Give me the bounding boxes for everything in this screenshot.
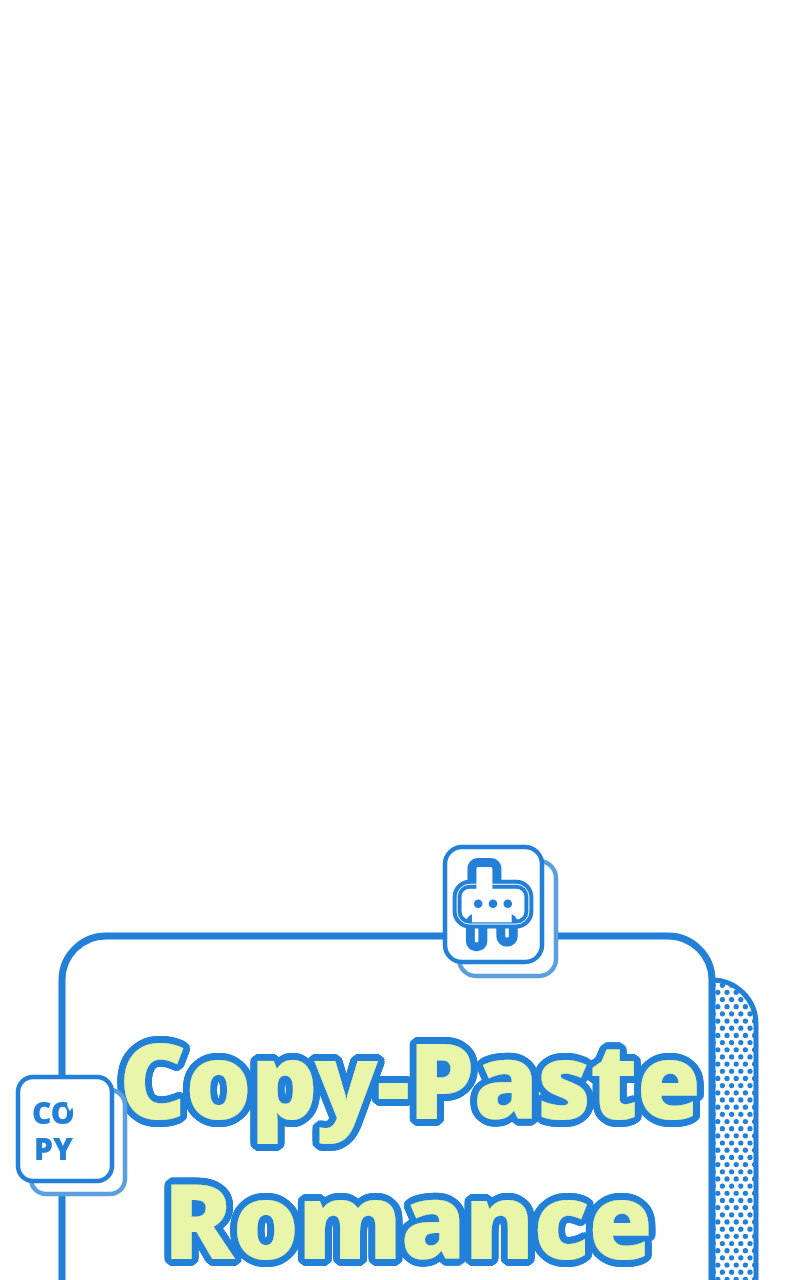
button[interactable]: Copy-Paste Romance cover xyxy=(0,0,800,1280)
